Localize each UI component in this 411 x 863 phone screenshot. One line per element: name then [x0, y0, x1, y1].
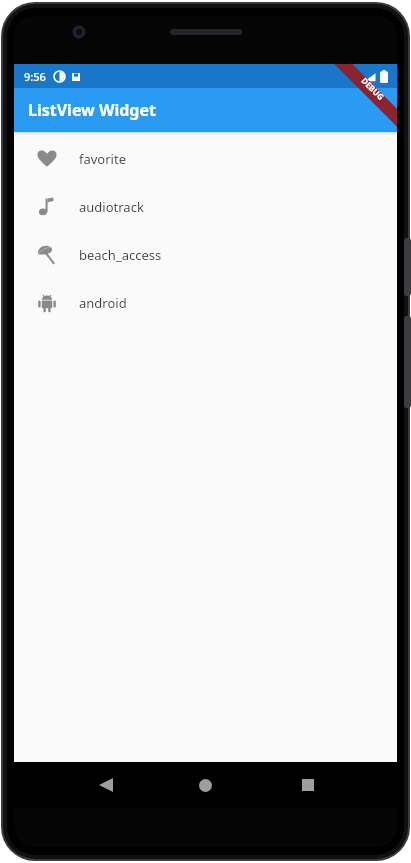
- staticText: ListView Widget: [28, 99, 156, 121]
- staticText: DEBUG: [359, 75, 387, 102]
- button[interactable]: android: [14, 279, 397, 327]
- staticText: 9:56: [24, 69, 46, 84]
- button[interactable]: audiotrack: [14, 183, 397, 231]
- button[interactable]: favorite: [14, 135, 397, 183]
- button[interactable]: Recent apps: [288, 765, 328, 805]
- staticText: beach_access: [79, 246, 162, 264]
- staticText: android: [79, 294, 127, 312]
- button[interactable]: Home: [185, 765, 225, 805]
- staticText: favorite: [79, 150, 126, 168]
- button[interactable]: Back: [86, 765, 126, 805]
- staticText: audiotrack: [79, 198, 144, 216]
- button[interactable]: beach_access: [14, 231, 397, 279]
